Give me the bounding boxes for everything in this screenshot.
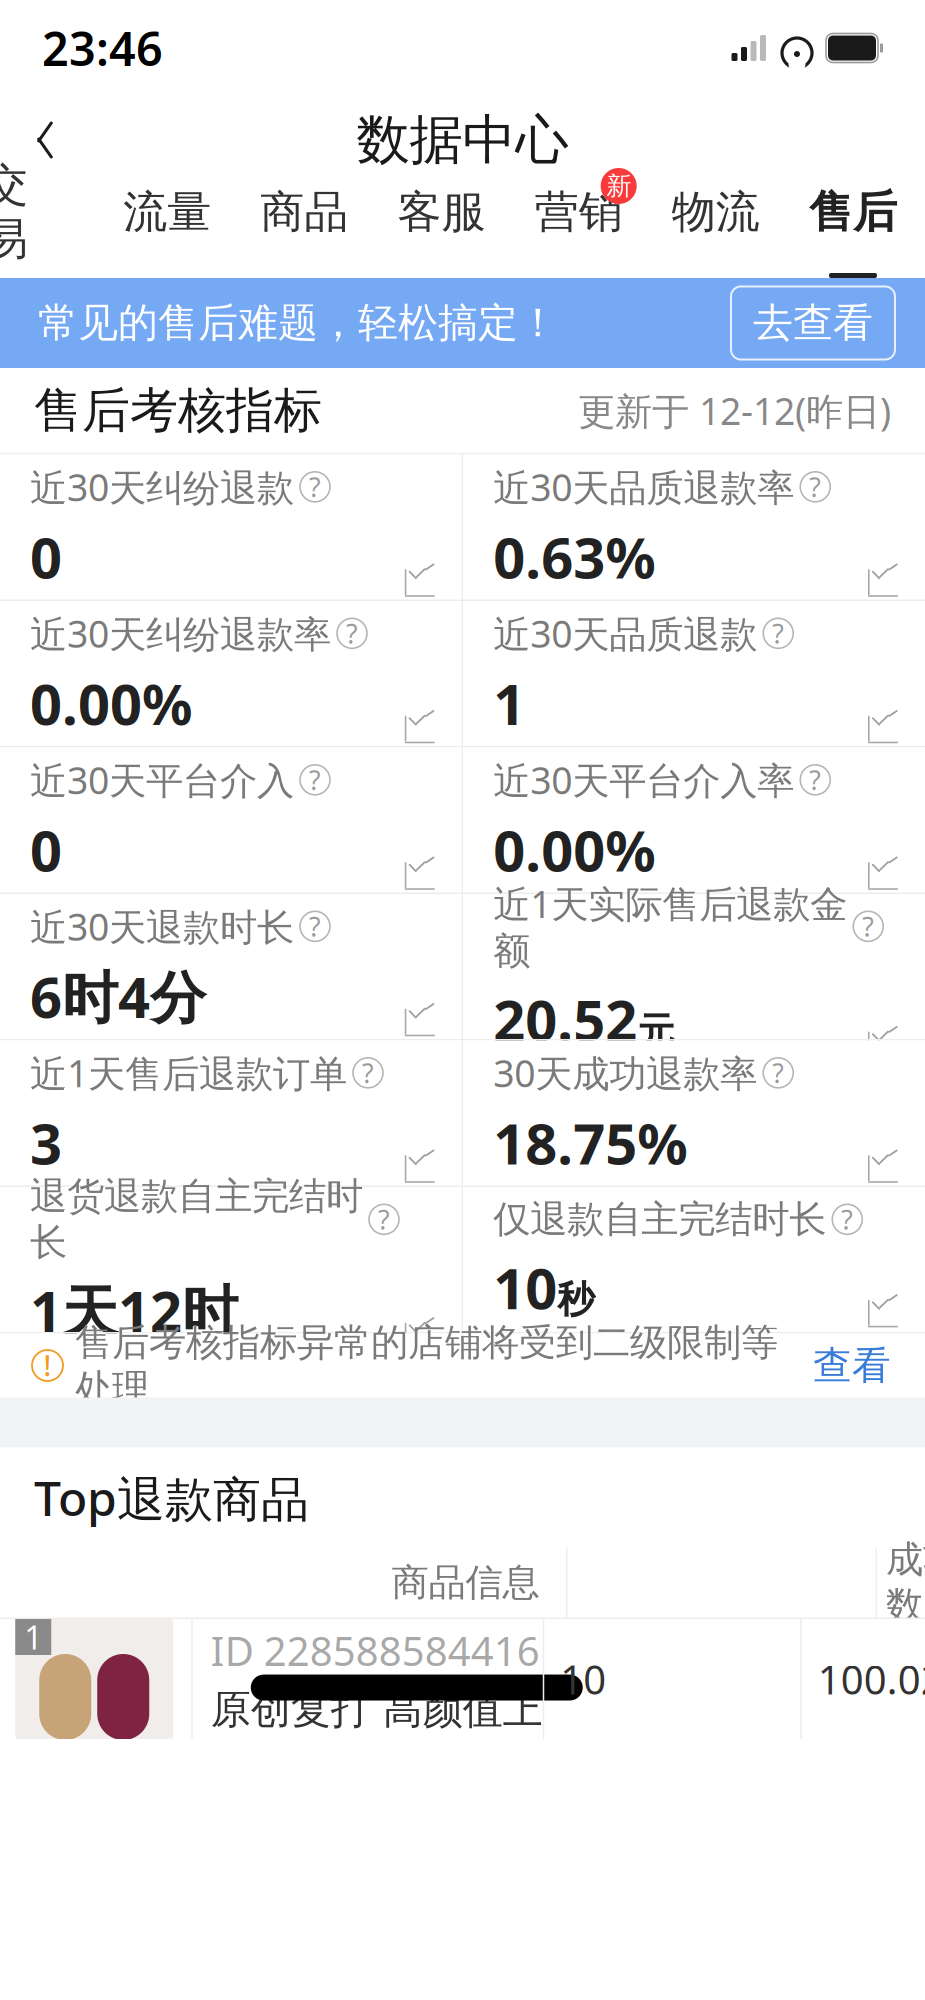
staticText: 近1天售后退款订单 — [30, 1048, 347, 1098]
staticText: 近30天平台介入率 — [493, 755, 794, 805]
staticText: ? — [772, 1055, 784, 1090]
staticText: ? — [346, 616, 358, 651]
staticText: 成功退款订单数 — [886, 1537, 925, 1628]
button[interactable]: 近30天平台介入率 — [463, 747, 925, 892]
staticText: ? — [809, 762, 821, 797]
staticText: 近1天实际售后退款金额 — [493, 879, 847, 974]
staticText: ? — [841, 1202, 853, 1237]
staticText: 3 — [30, 1106, 62, 1180]
button[interactable]: 流量 — [123, 184, 211, 278]
staticText: 售后考核指标 — [34, 381, 322, 440]
staticText: 1 — [24, 1616, 42, 1658]
button[interactable]: 售后 — [809, 184, 897, 278]
button[interactable]: 退货退款自主完结时长 — [0, 1187, 462, 1332]
staticText: 近30天纠纷退款率 — [30, 608, 331, 658]
staticText: 常见的售后难题，轻松搞定！ — [38, 298, 558, 347]
button[interactable]: 近30天品质退款率 — [463, 454, 925, 599]
staticText: 1天12时 — [30, 1273, 238, 1348]
staticText: 秒 — [557, 1277, 594, 1323]
staticText: 6时4分 — [30, 959, 206, 1033]
button[interactable]: 30天成功退款率 — [463, 1040, 925, 1185]
staticText: 营销 — [535, 185, 623, 239]
staticText: 售后考核指标异常的店铺将受到二级限制等处理 — [75, 1320, 778, 1411]
button[interactable]: 近30天退款时长 — [0, 894, 462, 1039]
staticText: 数据中心 — [356, 107, 568, 173]
staticText: 新 — [606, 170, 631, 201]
staticText: ? — [309, 909, 321, 944]
staticText: 原创复打 高颜值上 — [211, 1685, 543, 1734]
staticText: 0 — [30, 813, 62, 887]
staticText: 商品信息 — [391, 1560, 539, 1605]
staticText: 流量 — [123, 185, 211, 239]
staticText: 物流 — [672, 185, 760, 239]
staticText: 近30天纠纷退款 — [30, 462, 294, 512]
button[interactable]: 物流 — [672, 184, 760, 278]
staticText: ? — [362, 1055, 374, 1090]
staticText: 0.00% — [30, 666, 193, 740]
staticText: 退货退款自主完结时长 — [30, 1173, 363, 1265]
staticText: 18.75% — [493, 1106, 688, 1180]
staticText: 0.00% — [493, 813, 656, 887]
staticText: ? — [309, 762, 321, 797]
staticText: 1 — [493, 666, 525, 740]
staticText: 近30天退款时长 — [30, 901, 294, 951]
staticText: ? — [772, 616, 784, 651]
staticText: 客服 — [397, 185, 485, 239]
staticText: 近30天品质退款率 — [493, 462, 794, 512]
staticText: 0 — [30, 520, 62, 594]
staticText: 0.63% — [493, 520, 656, 594]
staticText: 商品 — [260, 185, 348, 239]
staticText: 元 — [637, 1008, 674, 1054]
button[interactable]: 近1天实际售后退款金额 — [463, 894, 925, 1039]
staticText: 100.02 — [818, 1652, 925, 1705]
staticText: 售后 — [809, 185, 897, 239]
button[interactable]: 营销 — [535, 184, 623, 278]
button[interactable]: 常见的售后难题，轻松搞定！ — [0, 278, 925, 368]
staticText: ! — [43, 1347, 51, 1384]
button[interactable]: 近30天纠纷退款 — [0, 454, 462, 599]
button[interactable]: 交易 — [0, 184, 30, 278]
button[interactable]: 近30天纠纷退款率 — [0, 601, 462, 746]
staticText: 20.52 — [493, 982, 637, 1056]
staticText: 10 — [560, 1652, 606, 1705]
staticText: 仅退款自主完结时长 — [493, 1196, 826, 1242]
staticText: 近30天平台介入 — [30, 755, 294, 805]
staticText: 更新于 12-12(昨日) — [578, 386, 891, 435]
staticText: ? — [309, 469, 321, 504]
staticText: 交易 — [0, 158, 28, 266]
button[interactable]: 近1天售后退款订单 — [0, 1040, 462, 1185]
staticText: Top退款商品 — [34, 1465, 309, 1529]
button[interactable]: 近30天平台介入 — [0, 747, 462, 892]
button[interactable]: 仅退款自主完结时长 — [463, 1187, 925, 1332]
staticText: ? — [809, 469, 821, 504]
button[interactable]: 商品 — [260, 184, 348, 278]
staticText: 查看 — [813, 1342, 891, 1389]
staticText: 10 — [493, 1250, 557, 1325]
button[interactable]: 查看 — [813, 1342, 891, 1389]
button[interactable]: 客服 — [397, 184, 485, 278]
staticText: 去查看 — [753, 298, 873, 347]
staticText: ? — [862, 909, 874, 944]
staticText: 30天成功退款率 — [493, 1048, 757, 1098]
staticText: ? — [378, 1202, 390, 1237]
staticText: 近30天品质退款 — [493, 608, 757, 658]
staticText: ID 228588584416 — [211, 1624, 540, 1677]
staticText: 23:46 — [42, 17, 163, 79]
button[interactable]: 返回 — [0, 96, 90, 184]
button[interactable]: 近30天品质退款 — [463, 601, 925, 746]
